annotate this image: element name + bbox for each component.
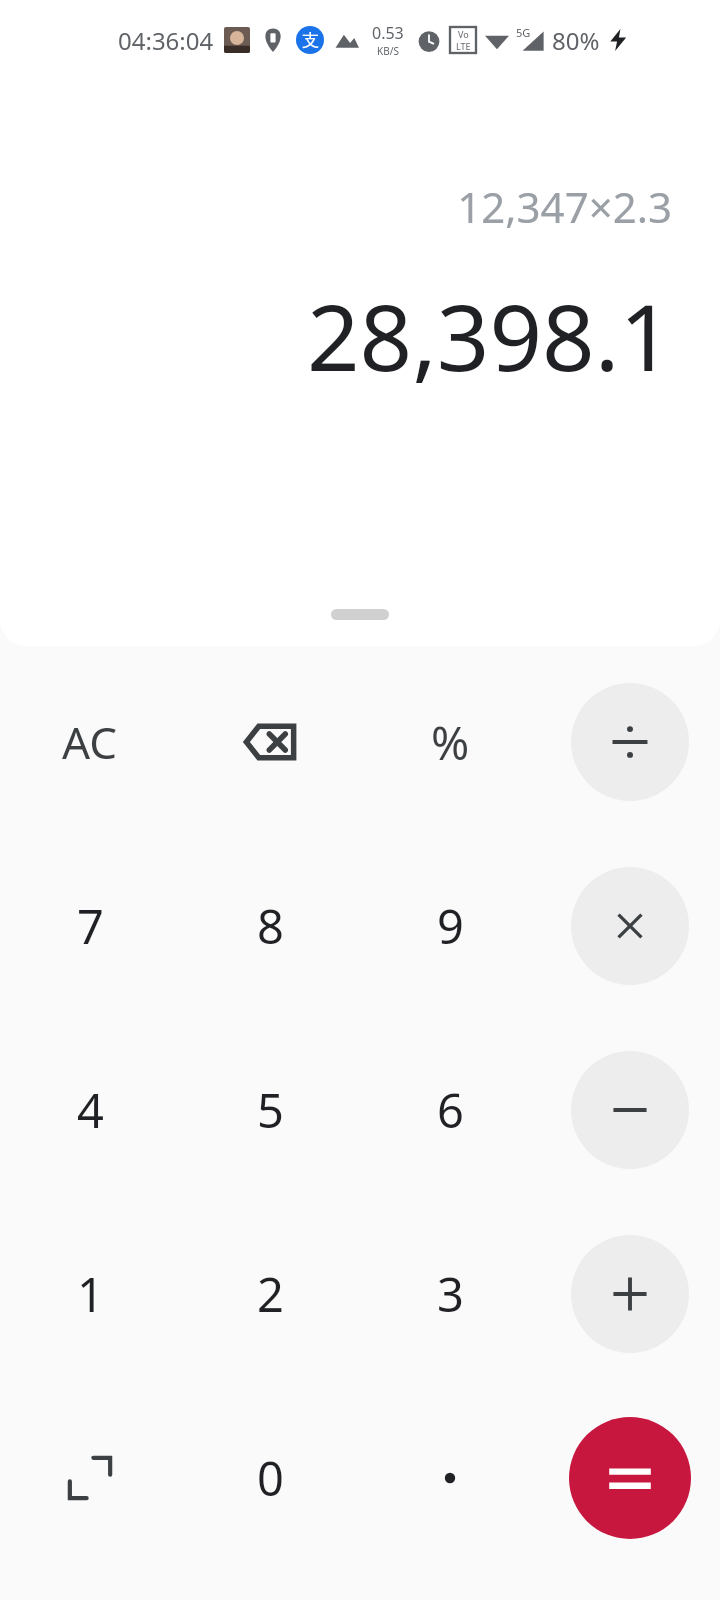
staticText: 支 [302,30,319,51]
staticText: LTE [456,40,471,52]
staticText: KB/S [377,44,399,58]
button[interactable]: Multiply [540,834,720,1018]
button[interactable]: Add [540,1202,720,1386]
button[interactable]: 7 [0,834,180,1018]
button[interactable]: Divide [540,650,720,834]
button[interactable]: 3 [360,1202,540,1386]
staticText: 5G [516,25,531,40]
staticText: % [431,711,470,774]
staticText: 28,398.1 [306,273,672,398]
staticText: 80% [552,24,600,57]
button[interactable]: 6 [360,1018,540,1202]
staticText: 0.53 [372,22,404,44]
staticText: 6 [437,1078,464,1142]
staticText: 2 [257,1262,284,1326]
button[interactable]: 0 [180,1386,360,1570]
staticText: 4 [77,1078,104,1142]
button[interactable]: 4 [0,1018,180,1202]
button[interactable]: Expand keypad [0,1386,180,1570]
staticText: 9 [437,894,464,958]
staticText: 04:36:04 [118,24,214,57]
button[interactable]: Backspace [180,650,360,834]
button[interactable]: 5 [180,1018,360,1202]
staticText: 12,347×2.3 [457,178,672,235]
button[interactable]: 1 [0,1202,180,1386]
staticText: 3 [437,1262,464,1326]
staticText: Vo [458,28,469,40]
button[interactable]: 8 [180,834,360,1018]
staticText: 5 [257,1078,284,1142]
staticText: 7 [77,894,104,958]
button[interactable]: 9 [360,834,540,1018]
staticText: AC [62,712,118,772]
staticText: 0 [257,1446,284,1510]
button[interactable]: Equals [540,1386,720,1570]
button[interactable]: 2 [180,1202,360,1386]
button[interactable]: % [360,650,540,834]
button[interactable]: Subtract [540,1018,720,1202]
staticText: 8 [257,894,284,958]
staticText: 1 [77,1262,104,1326]
button[interactable]: Decimal point [360,1386,540,1570]
button[interactable]: AC [0,650,180,834]
